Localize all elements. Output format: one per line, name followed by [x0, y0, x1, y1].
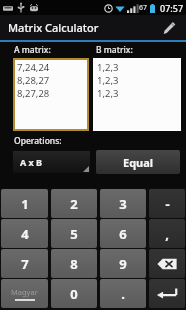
button[interactable]: 4 — [1, 219, 48, 248]
button[interactable]: 6 — [100, 219, 146, 248]
staticText: 7 — [21, 255, 29, 273]
button[interactable]: 7,24,24 — [13, 58, 89, 131]
staticText: A x B — [20, 156, 43, 168]
staticText: 5 — [70, 225, 78, 243]
staticText: 8,28,27 — [17, 74, 50, 87]
button[interactable]: 7 — [1, 249, 48, 278]
staticText: Magyar — [11, 287, 38, 297]
button[interactable]: 5 — [51, 219, 97, 248]
staticText: 07:57 — [160, 2, 184, 14]
staticText: 2 — [70, 195, 78, 213]
staticText: Equal — [123, 155, 154, 170]
button[interactable]: Edit — [158, 17, 180, 39]
button[interactable]: Equal — [96, 150, 180, 174]
staticText: . — [121, 285, 125, 303]
staticText: B matrix: — [96, 44, 133, 56]
staticText: 4 — [21, 225, 29, 243]
staticText: 67 — [139, 3, 148, 13]
staticText: Operations: — [14, 135, 62, 147]
staticText: 9 — [119, 255, 127, 273]
button[interactable]: 9 — [100, 249, 146, 278]
button[interactable]: 2 — [51, 189, 97, 218]
button[interactable]: Space — [1, 279, 48, 308]
staticText: 1,2,3 — [97, 87, 119, 100]
staticText: Matrix Calculator — [8, 20, 99, 35]
button[interactable]: 8 — [51, 249, 97, 278]
staticText: 6 — [119, 225, 127, 243]
staticText: - — [165, 195, 170, 213]
staticText: 8,27,28 — [17, 87, 50, 100]
button[interactable]: 0 — [51, 279, 97, 308]
button[interactable]: 1 — [1, 189, 48, 218]
staticText: 3 — [119, 195, 127, 213]
button[interactable]: 1,2,3 — [93, 58, 181, 131]
button[interactable]: Backspace — [149, 249, 185, 278]
button[interactable]: A x B — [13, 151, 90, 173]
staticText: 8 — [70, 255, 78, 273]
staticText: , — [165, 225, 169, 243]
button[interactable]: . — [100, 279, 146, 308]
button[interactable]: , — [149, 219, 185, 248]
staticText: 1,2,3 — [97, 74, 119, 87]
staticText: A matrix: — [14, 44, 51, 56]
staticText: 1 — [21, 195, 29, 213]
staticText: 0 — [70, 285, 78, 303]
staticText: 7,24,24 — [17, 61, 50, 74]
button[interactable]: 3 — [100, 189, 146, 218]
staticText: 1,2,3 — [97, 61, 119, 74]
button[interactable]: Enter — [149, 279, 185, 308]
button[interactable]: - — [149, 189, 185, 218]
